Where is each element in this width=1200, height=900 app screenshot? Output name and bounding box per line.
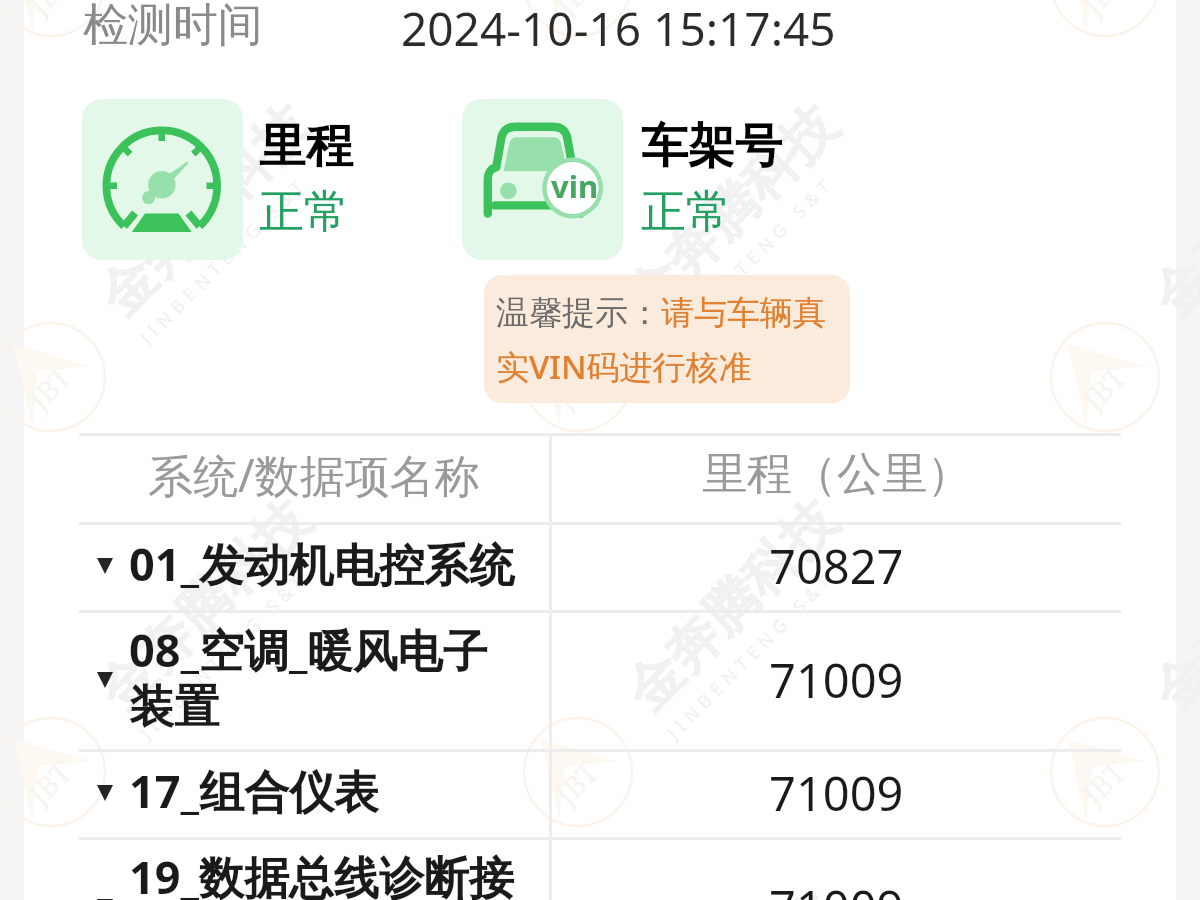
staticText: 71009	[769, 648, 904, 712]
staticText: 检测时间	[83, 0, 263, 54]
staticText: 71009	[769, 761, 904, 825]
staticText: 金奔腾科技	[612, 881, 851, 900]
staticText: JINBENTENG S&T	[134, 566, 313, 744]
staticText: JINBENTENG S&T	[661, 171, 840, 349]
staticText: JBT	[19, 752, 80, 813]
staticText: 01_发动机电控系统	[129, 533, 514, 594]
staticText: 温馨提示：	[496, 292, 661, 334]
staticText: 08_空调_暖风电子 装置	[129, 619, 488, 735]
staticText: JBT	[19, 357, 80, 418]
staticText: 19_数据总线诊断接 口	[129, 846, 514, 900]
staticText: 金奔腾科技	[85, 91, 324, 330]
staticText: 里程	[259, 117, 353, 176]
button[interactable]: 车架号	[462, 99, 623, 260]
staticText: 正常	[259, 184, 349, 241]
staticText: 2024-10-16 15:17:45	[401, 0, 836, 60]
staticText: 金奔腾科技	[612, 91, 851, 330]
staticText: 金奔腾科技	[85, 486, 324, 725]
staticText: 71009	[769, 875, 904, 900]
staticText: JBT	[19, 0, 80, 23]
staticText: JBT	[546, 0, 607, 23]
staticText: JBT	[1073, 0, 1134, 23]
button[interactable]: 19_数据总线诊断接 口	[79, 837, 1121, 900]
staticText: JINBENTENG S&T	[661, 566, 840, 744]
button[interactable]: 08_空调_暖风电子 装置	[79, 610, 1121, 749]
staticText: 70827	[769, 534, 904, 598]
staticText: 金奔腾科技	[85, 881, 324, 900]
button[interactable]: 17_组合仪表	[79, 749, 1121, 837]
staticText: 金奔腾科技	[1139, 91, 1200, 330]
staticText: JBT	[1073, 752, 1134, 813]
staticText: 17_组合仪表	[129, 760, 379, 821]
button[interactable]: 里程	[82, 99, 243, 260]
staticText: 正常	[641, 184, 731, 241]
staticText: vin	[551, 165, 599, 207]
staticText: 金奔腾科技	[1139, 881, 1200, 900]
staticText: 里程（公里）	[702, 446, 972, 503]
staticText: 实VIN码进行核准	[496, 344, 752, 389]
button[interactable]: 01_发动机电控系统	[79, 522, 1121, 610]
staticText: 金奔腾科技	[1139, 486, 1200, 725]
staticText: JBT	[1073, 357, 1134, 418]
staticText: 车架号	[641, 117, 782, 176]
staticText: JBT	[546, 752, 607, 813]
staticText: JBT	[546, 357, 607, 418]
staticText: 系统/数据项名称	[148, 444, 480, 505]
staticText: 请与车辆真	[661, 292, 826, 334]
staticText: JINBENTENG S&T	[134, 171, 313, 349]
staticText: 金奔腾科技	[612, 486, 851, 725]
